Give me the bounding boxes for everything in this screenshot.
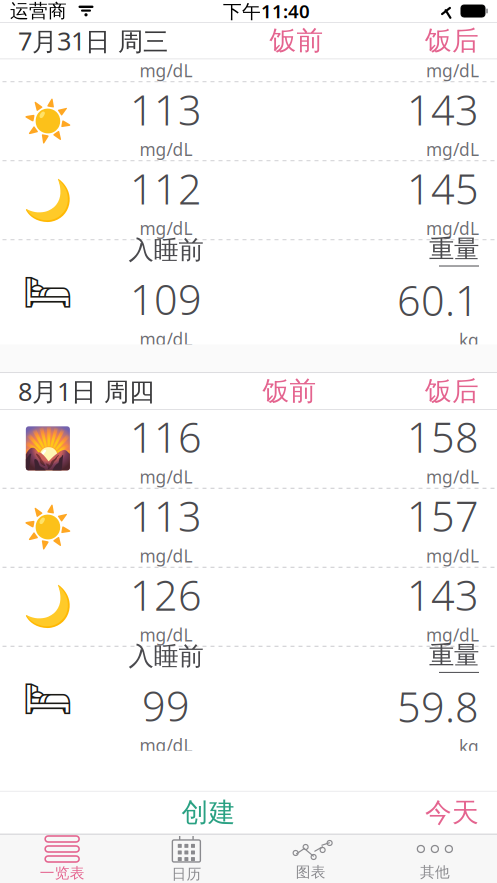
staticText: 入睡前: [128, 234, 203, 265]
staticText: 143: [407, 82, 479, 137]
staticText: mg/dL: [426, 544, 479, 567]
button[interactable]: 创建: [138, 792, 278, 834]
staticText: 🌄: [23, 426, 73, 472]
staticText: 112: [130, 161, 202, 216]
staticText: 饭前: [262, 375, 316, 407]
button[interactable]: ☀️: [0, 489, 497, 567]
staticText: mg/dL: [426, 59, 479, 82]
staticText: mg/dL: [139, 217, 192, 240]
staticText: kg: [459, 735, 479, 758]
staticText: 113: [130, 488, 202, 543]
button[interactable]: 图表: [248, 835, 373, 883]
staticText: kg: [459, 328, 479, 351]
staticText: mg/dL: [139, 465, 192, 488]
staticText: 饭前: [269, 24, 323, 57]
staticText: 158: [407, 409, 479, 464]
staticText: mg/dL: [426, 465, 479, 488]
staticText: ☀️: [23, 98, 73, 144]
staticText: 99: [142, 678, 190, 733]
staticText: mg/dL: [139, 623, 192, 646]
staticText: ☀️: [23, 505, 73, 551]
staticText: 157: [407, 488, 479, 543]
staticText: 113: [130, 82, 202, 137]
button[interactable]: 一览表: [0, 835, 124, 883]
staticText: 145: [407, 161, 479, 216]
staticText: 59.8: [397, 679, 479, 734]
staticText: 🌙: [23, 177, 73, 223]
staticText: 60.1: [397, 272, 479, 327]
staticText: 图表: [296, 863, 326, 881]
staticText: 🛏: [22, 676, 73, 722]
staticText: mg/dL: [426, 217, 479, 240]
staticText: mg/dL: [426, 138, 479, 161]
staticText: 创建: [181, 796, 235, 829]
button[interactable]: ☀️: [0, 82, 497, 160]
staticText: 入睡前: [128, 641, 203, 672]
button[interactable]: 🌄: [0, 410, 497, 488]
staticText: 126: [130, 567, 202, 622]
staticText: 🌙: [23, 584, 73, 630]
button[interactable]: 其他: [373, 835, 497, 883]
staticText: 其他: [420, 863, 450, 881]
staticText: 109: [130, 271, 202, 326]
staticText: 下午11:40: [223, 0, 310, 23]
staticText: 重量: [429, 233, 479, 264]
staticText: 🛏: [22, 269, 73, 315]
staticText: mg/dL: [139, 59, 192, 82]
staticText: mg/dL: [139, 734, 192, 757]
staticText: 饭后: [425, 375, 479, 407]
staticText: 7月31日 周三: [18, 24, 168, 57]
staticText: 116: [130, 409, 202, 464]
staticText: mg/dL: [426, 623, 479, 646]
staticText: mg/dL: [139, 327, 192, 350]
button[interactable]: 🛏: [0, 647, 497, 751]
staticText: 143: [407, 567, 479, 622]
button[interactable]: 🌙: [0, 568, 497, 646]
button[interactable]: 今天: [417, 792, 487, 834]
button[interactable]: 日历: [124, 835, 248, 883]
staticText: 运营商: [10, 0, 67, 22]
staticText: 今天: [425, 796, 479, 829]
staticText: mg/dL: [139, 138, 192, 161]
staticText: 日历: [171, 865, 201, 883]
button[interactable]: 🛏: [0, 240, 497, 344]
staticText: mg/dL: [139, 544, 192, 567]
staticText: 重量: [429, 640, 479, 671]
staticText: 饭后: [425, 24, 479, 57]
staticText: 8月1日 周四: [18, 374, 154, 408]
button[interactable]: 🌙: [0, 161, 497, 239]
staticText: 一览表: [40, 864, 85, 882]
